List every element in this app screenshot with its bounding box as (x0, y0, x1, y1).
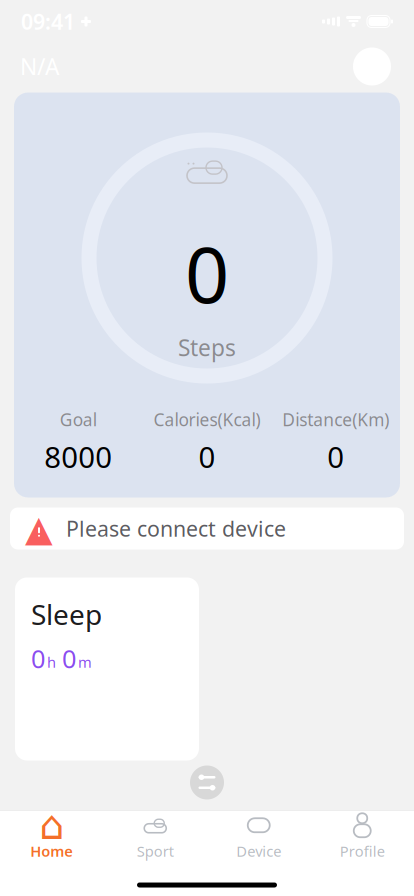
staticText: 0 (198, 437, 215, 476)
staticText: Steps (178, 332, 236, 362)
button[interactable]: Device (207, 811, 310, 863)
staticText: ▲ (25, 508, 53, 549)
staticText: 0 (327, 437, 344, 476)
button[interactable]: ▲ (10, 507, 404, 549)
button[interactable]: Profile (310, 811, 414, 863)
staticText: Sleep (31, 595, 102, 633)
staticText: Device (236, 841, 281, 861)
staticText: Calories(Kcal) (153, 408, 260, 431)
staticText: 09:41 (21, 7, 75, 36)
staticText: Please connect device (66, 514, 286, 543)
staticText: Sport (137, 841, 174, 861)
button[interactable]: Sleep (15, 577, 199, 760)
button[interactable]: Sport (103, 811, 207, 863)
staticText: Goal (60, 408, 97, 431)
staticText: 0 (185, 222, 229, 324)
staticText: h (47, 652, 56, 672)
button[interactable]: ⌂ (0, 811, 103, 863)
staticText: 8000 (44, 437, 112, 476)
button[interactable]: Customize cards (185, 760, 229, 804)
staticText: N/A (20, 51, 59, 81)
staticText: Profile (340, 841, 385, 861)
staticText: m (78, 652, 92, 672)
button[interactable]: Connect device (350, 44, 394, 88)
staticText: 0 (62, 642, 76, 675)
staticText: 0 (31, 642, 45, 675)
staticText: Home (30, 841, 73, 861)
staticText: ⌂ (39, 803, 64, 848)
staticText: Distance(Km) (282, 408, 389, 431)
